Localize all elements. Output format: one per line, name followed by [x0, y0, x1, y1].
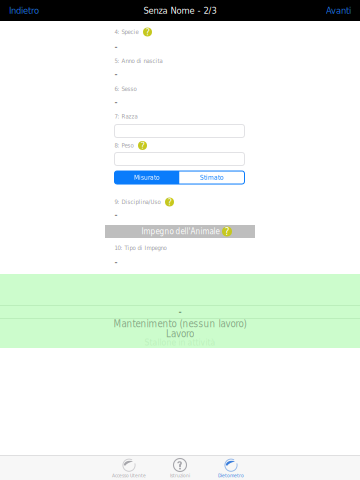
staticText: 5: Anno di nascita — [114, 57, 162, 64]
staticText: Dietometro — [218, 473, 244, 478]
staticText: 6: Sesso — [114, 85, 136, 92]
button[interactable]: Accesso Utente — [103, 456, 154, 480]
staticText: 4: Specie — [114, 28, 138, 35]
staticText: ? — [167, 197, 171, 207]
staticText: 8: Peso — [114, 142, 133, 149]
button[interactable]: Aiuto — [165, 197, 174, 206]
staticText: - — [114, 257, 117, 267]
staticText: - — [114, 209, 117, 220]
staticText: Lavoro — [166, 328, 194, 340]
staticText: ? — [145, 27, 149, 37]
button[interactable]: Indietro — [9, 0, 39, 21]
staticText: - — [178, 306, 181, 317]
staticText: Stimato — [200, 174, 224, 181]
button[interactable]: Dietometro — [205, 456, 256, 480]
staticText: ? — [140, 140, 144, 151]
staticText: Accesso Utente — [112, 473, 146, 478]
staticText: Stallone in attività — [144, 337, 215, 347]
staticText: Senza Nome - 2/3 — [143, 5, 216, 16]
staticText: 9: Disciplina/Uso — [114, 198, 160, 205]
staticText: Impegno dell'Animale — [141, 227, 219, 236]
staticText: - — [114, 97, 117, 107]
staticText: 10: Tipo di Impegno — [114, 244, 166, 251]
staticText: Misurato — [134, 174, 160, 181]
button[interactable]: Misurato — [114, 171, 179, 184]
button[interactable]: Istruzioni — [154, 456, 205, 480]
button[interactable]: Aiuto — [143, 27, 152, 36]
staticText: - — [114, 41, 117, 52]
button[interactable]: Aiuto — [138, 141, 147, 150]
staticText: ? — [224, 225, 229, 237]
button[interactable]: Stimato — [179, 171, 244, 184]
staticText: - — [114, 69, 117, 79]
button[interactable]: Aiuto — [222, 226, 232, 236]
staticText: Mantenimento (nessun lavoro) — [113, 318, 246, 330]
staticText: Indietro — [9, 5, 39, 16]
staticText: Istruzioni — [170, 473, 190, 478]
staticText: 7: Razza — [114, 113, 137, 120]
staticText: Avanti — [326, 5, 351, 16]
button[interactable]: Avanti — [326, 0, 351, 21]
